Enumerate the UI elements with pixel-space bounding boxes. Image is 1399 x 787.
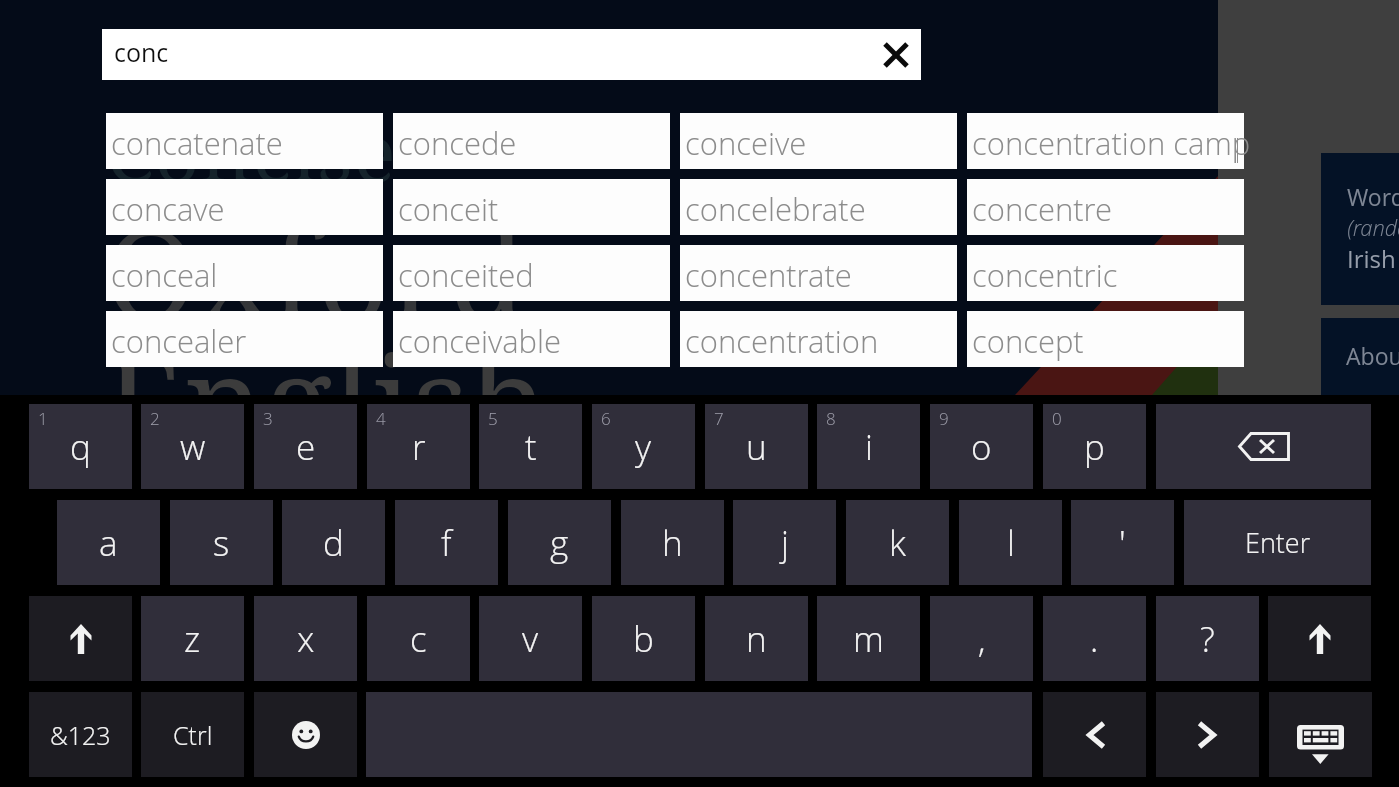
button[interactable]: conc [102,29,921,80]
button[interactable]: 2 [141,404,244,489]
button[interactable]: Shift [1268,596,1371,681]
button[interactable]: . [1043,596,1146,681]
button[interactable]: k [846,500,949,585]
staticText: conceal [111,254,218,296]
staticText: concentrate [685,254,852,296]
button[interactable]: About [1321,318,1399,395]
button[interactable]: l [959,500,1062,585]
button[interactable]: 9 [930,404,1033,489]
button[interactable]: Ctrl [141,692,244,777]
button[interactable]: Clear [870,29,921,80]
button[interactable]: concealer [106,311,383,367]
button[interactable]: c [367,596,470,681]
button[interactable]: n [705,596,808,681]
staticText: 2 [150,407,160,430]
staticText: 3 [263,407,273,430]
staticText: v [522,615,539,663]
button[interactable]: 4 [367,404,470,489]
button[interactable]: 8 [817,404,920,489]
staticText: concatenate [111,122,283,164]
button[interactable]: Shift [29,596,132,681]
button[interactable]: 6 [592,404,695,489]
button[interactable]: Hide keyboard [1269,692,1372,777]
staticText: conceive [685,122,807,164]
staticText: j [781,519,789,567]
button[interactable]: s [170,500,273,585]
button[interactable]: concentre [967,179,1244,235]
button[interactable]: concede [393,113,670,169]
staticText: t [525,423,537,471]
button[interactable]: ? [1156,596,1259,681]
staticText: 9 [939,407,949,430]
button[interactable]: d [282,500,385,585]
button[interactable]: x [254,596,357,681]
button[interactable]: Move cursor right [1156,692,1259,777]
button[interactable]: a [57,500,160,585]
staticText: concept [972,320,1084,362]
button[interactable]: conceive [680,113,957,169]
button[interactable]: ' [1071,500,1174,585]
staticText: s [213,519,230,567]
button[interactable]: 3 [254,404,357,489]
button[interactable]: v [479,596,582,681]
staticText: r [412,423,426,471]
staticText: Oxford [104,186,527,358]
button[interactable]: conceal [106,245,383,301]
button[interactable]: 0 [1043,404,1146,489]
staticText: m [853,615,884,663]
button[interactable]: b [592,596,695,681]
button[interactable]: j [733,500,836,585]
button[interactable]: &123 [29,692,132,777]
staticText: y [635,423,652,471]
button[interactable]: concelebrate [680,179,957,235]
staticText: . [1090,615,1099,663]
staticText: concentre [972,188,1113,230]
staticText: 6 [601,407,611,430]
button[interactable]: g [508,500,611,585]
staticText: 0 [1052,407,1062,430]
staticText: d [323,519,344,567]
staticText: a [99,519,118,567]
button[interactable]: Move cursor left [1043,692,1146,777]
button[interactable]: h [621,500,724,585]
button[interactable]: 5 [479,404,582,489]
staticText: Concise [105,96,396,205]
staticText: x [297,615,315,663]
button[interactable]: concentric [967,245,1244,301]
staticText: , [978,615,986,663]
staticText: w [180,423,206,471]
button[interactable]: concentration camp [967,113,1244,169]
button[interactable]: Word of the day [1321,153,1399,305]
staticText: z [184,615,201,663]
staticText: &123 [50,718,111,752]
button[interactable]: f [395,500,498,585]
button[interactable]: Emoji [254,692,357,777]
button[interactable]: z [141,596,244,681]
button[interactable]: Backspace [1156,404,1371,489]
staticText: concentration camp [972,122,1249,164]
button[interactable]: conceit [393,179,670,235]
button[interactable]: concept [967,311,1244,367]
staticText: About [1346,340,1399,371]
staticText: e [296,423,316,471]
button[interactable]: concatenate [106,113,383,169]
button[interactable]: , [930,596,1033,681]
button[interactable]: conceivable [393,311,670,367]
staticText: (random) [1347,212,1399,242]
staticText: Ctrl [173,718,213,752]
button[interactable]: 7 [705,404,808,489]
button[interactable]: concentration [680,311,957,367]
button[interactable]: Enter [1184,500,1371,585]
staticText: concentric [972,254,1118,296]
staticText: 1 [38,407,48,430]
button[interactable]: m [817,596,920,681]
button[interactable]: concentrate [680,245,957,301]
button[interactable]: concave [106,179,383,235]
button[interactable]: 1 [29,404,132,489]
staticText: k [889,519,906,567]
staticText: concentration [685,320,879,362]
staticText: c [410,615,427,663]
staticText: q [70,423,91,471]
button[interactable]: conceited [393,245,670,301]
